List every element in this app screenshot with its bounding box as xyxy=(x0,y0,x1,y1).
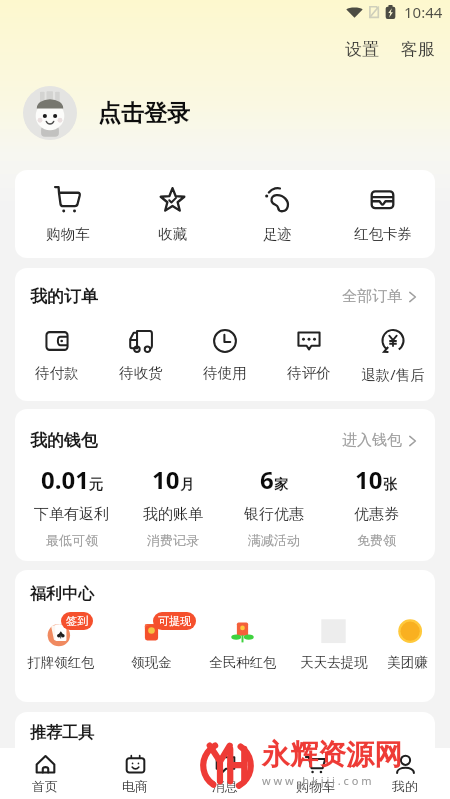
staticText: 全部订单 xyxy=(342,287,402,306)
button[interactable]: 退款/售后 xyxy=(351,329,435,384)
button[interactable]: 收藏 xyxy=(120,186,225,243)
staticText: 进入钱包 xyxy=(342,431,402,450)
button[interactable]: 点击登录 xyxy=(23,86,190,140)
staticText: 银行优惠 xyxy=(244,505,304,524)
button[interactable]: 首页 xyxy=(0,748,90,799)
staticText: 购物车 xyxy=(46,225,90,243)
staticText: 免费领 xyxy=(357,532,396,548)
staticText: 我的订单 xyxy=(30,286,98,307)
button[interactable]: 10 xyxy=(122,463,223,548)
staticText: 我的账单 xyxy=(143,505,203,524)
staticText: 张 xyxy=(383,476,397,494)
staticText: 6 xyxy=(260,463,274,496)
staticText: 首页 xyxy=(32,778,58,794)
button[interactable]: 待评价 xyxy=(267,329,351,382)
staticText: 购物车 xyxy=(296,778,335,794)
staticText: 待收货 xyxy=(119,364,163,382)
button[interactable]: 我的 xyxy=(360,748,450,799)
staticText: 待付款 xyxy=(35,364,79,382)
staticText: 待使用 xyxy=(203,364,247,382)
staticText: 天天去提现 xyxy=(300,654,368,671)
staticText: 福利中心 xyxy=(30,584,94,604)
staticText: 红包卡券 xyxy=(354,225,412,243)
button[interactable]: 待收货 xyxy=(99,329,183,382)
staticText: 最低可领 xyxy=(46,532,98,548)
button[interactable]: 签到 xyxy=(15,612,106,671)
staticText: 我的 xyxy=(392,778,418,794)
button[interactable]: 电商 xyxy=(90,748,180,799)
staticText: 美团赚 xyxy=(387,654,428,671)
staticText: 优惠券 xyxy=(354,505,399,524)
button[interactable]: 0.01 xyxy=(21,463,122,548)
staticText: 月 xyxy=(180,476,194,494)
staticText: 领现金 xyxy=(131,654,172,671)
staticText: 收藏 xyxy=(158,225,187,243)
staticText: 打牌领红包 xyxy=(27,654,95,671)
staticText: 点击登录 xyxy=(98,99,190,128)
button[interactable]: 10 xyxy=(325,463,427,548)
button[interactable]: 待使用 xyxy=(183,329,267,382)
button[interactable]: 可提现 xyxy=(106,612,197,671)
staticText: 电商 xyxy=(122,778,148,794)
button[interactable]: 天天去提现 xyxy=(288,612,379,671)
staticText: 元 xyxy=(89,476,103,494)
staticText: 10 xyxy=(152,463,180,496)
staticText: 足迹 xyxy=(263,225,292,243)
staticText: 我的钱包 xyxy=(30,430,98,451)
staticText: 下单有返利 xyxy=(34,505,109,524)
button[interactable]: 客服 xyxy=(398,36,438,63)
staticText: 10 xyxy=(355,463,383,496)
staticText: 消息 xyxy=(212,778,238,794)
button[interactable]: 美团赚 xyxy=(379,612,435,671)
button[interactable]: 设置 xyxy=(342,36,382,63)
staticText: 推荐工具 xyxy=(30,723,94,743)
staticText: 家 xyxy=(274,476,288,494)
button[interactable]: 进入钱包 xyxy=(342,431,417,450)
staticText: 满减活动 xyxy=(248,532,300,548)
staticText: 10:44 xyxy=(404,2,443,22)
staticText: 消费记录 xyxy=(147,532,199,548)
staticText: 客服 xyxy=(401,39,435,60)
button[interactable]: 6 xyxy=(223,463,325,548)
staticText: 可提现 xyxy=(158,614,191,628)
staticText: 待评价 xyxy=(287,364,331,382)
button[interactable]: 消息 xyxy=(180,748,270,799)
staticText: 退款/售后 xyxy=(361,364,425,384)
staticText: 全民种红包 xyxy=(209,654,277,671)
staticText: 永辉资源网 xyxy=(262,737,402,772)
button[interactable]: 购物车 xyxy=(270,748,360,799)
staticText: 0.01 xyxy=(41,463,89,496)
button[interactable]: 足迹 xyxy=(225,186,330,243)
button[interactable]: 红包卡券 xyxy=(330,186,435,243)
staticText: 签到 xyxy=(66,614,88,628)
button[interactable]: 全民种红包 xyxy=(197,612,288,671)
button[interactable]: 全部订单 xyxy=(342,287,417,306)
staticText: 设置 xyxy=(345,39,379,60)
button[interactable]: 购物车 xyxy=(15,186,120,243)
staticText: w w w . h k j j j . c o m xyxy=(262,773,372,788)
button[interactable]: 待付款 xyxy=(15,329,99,382)
